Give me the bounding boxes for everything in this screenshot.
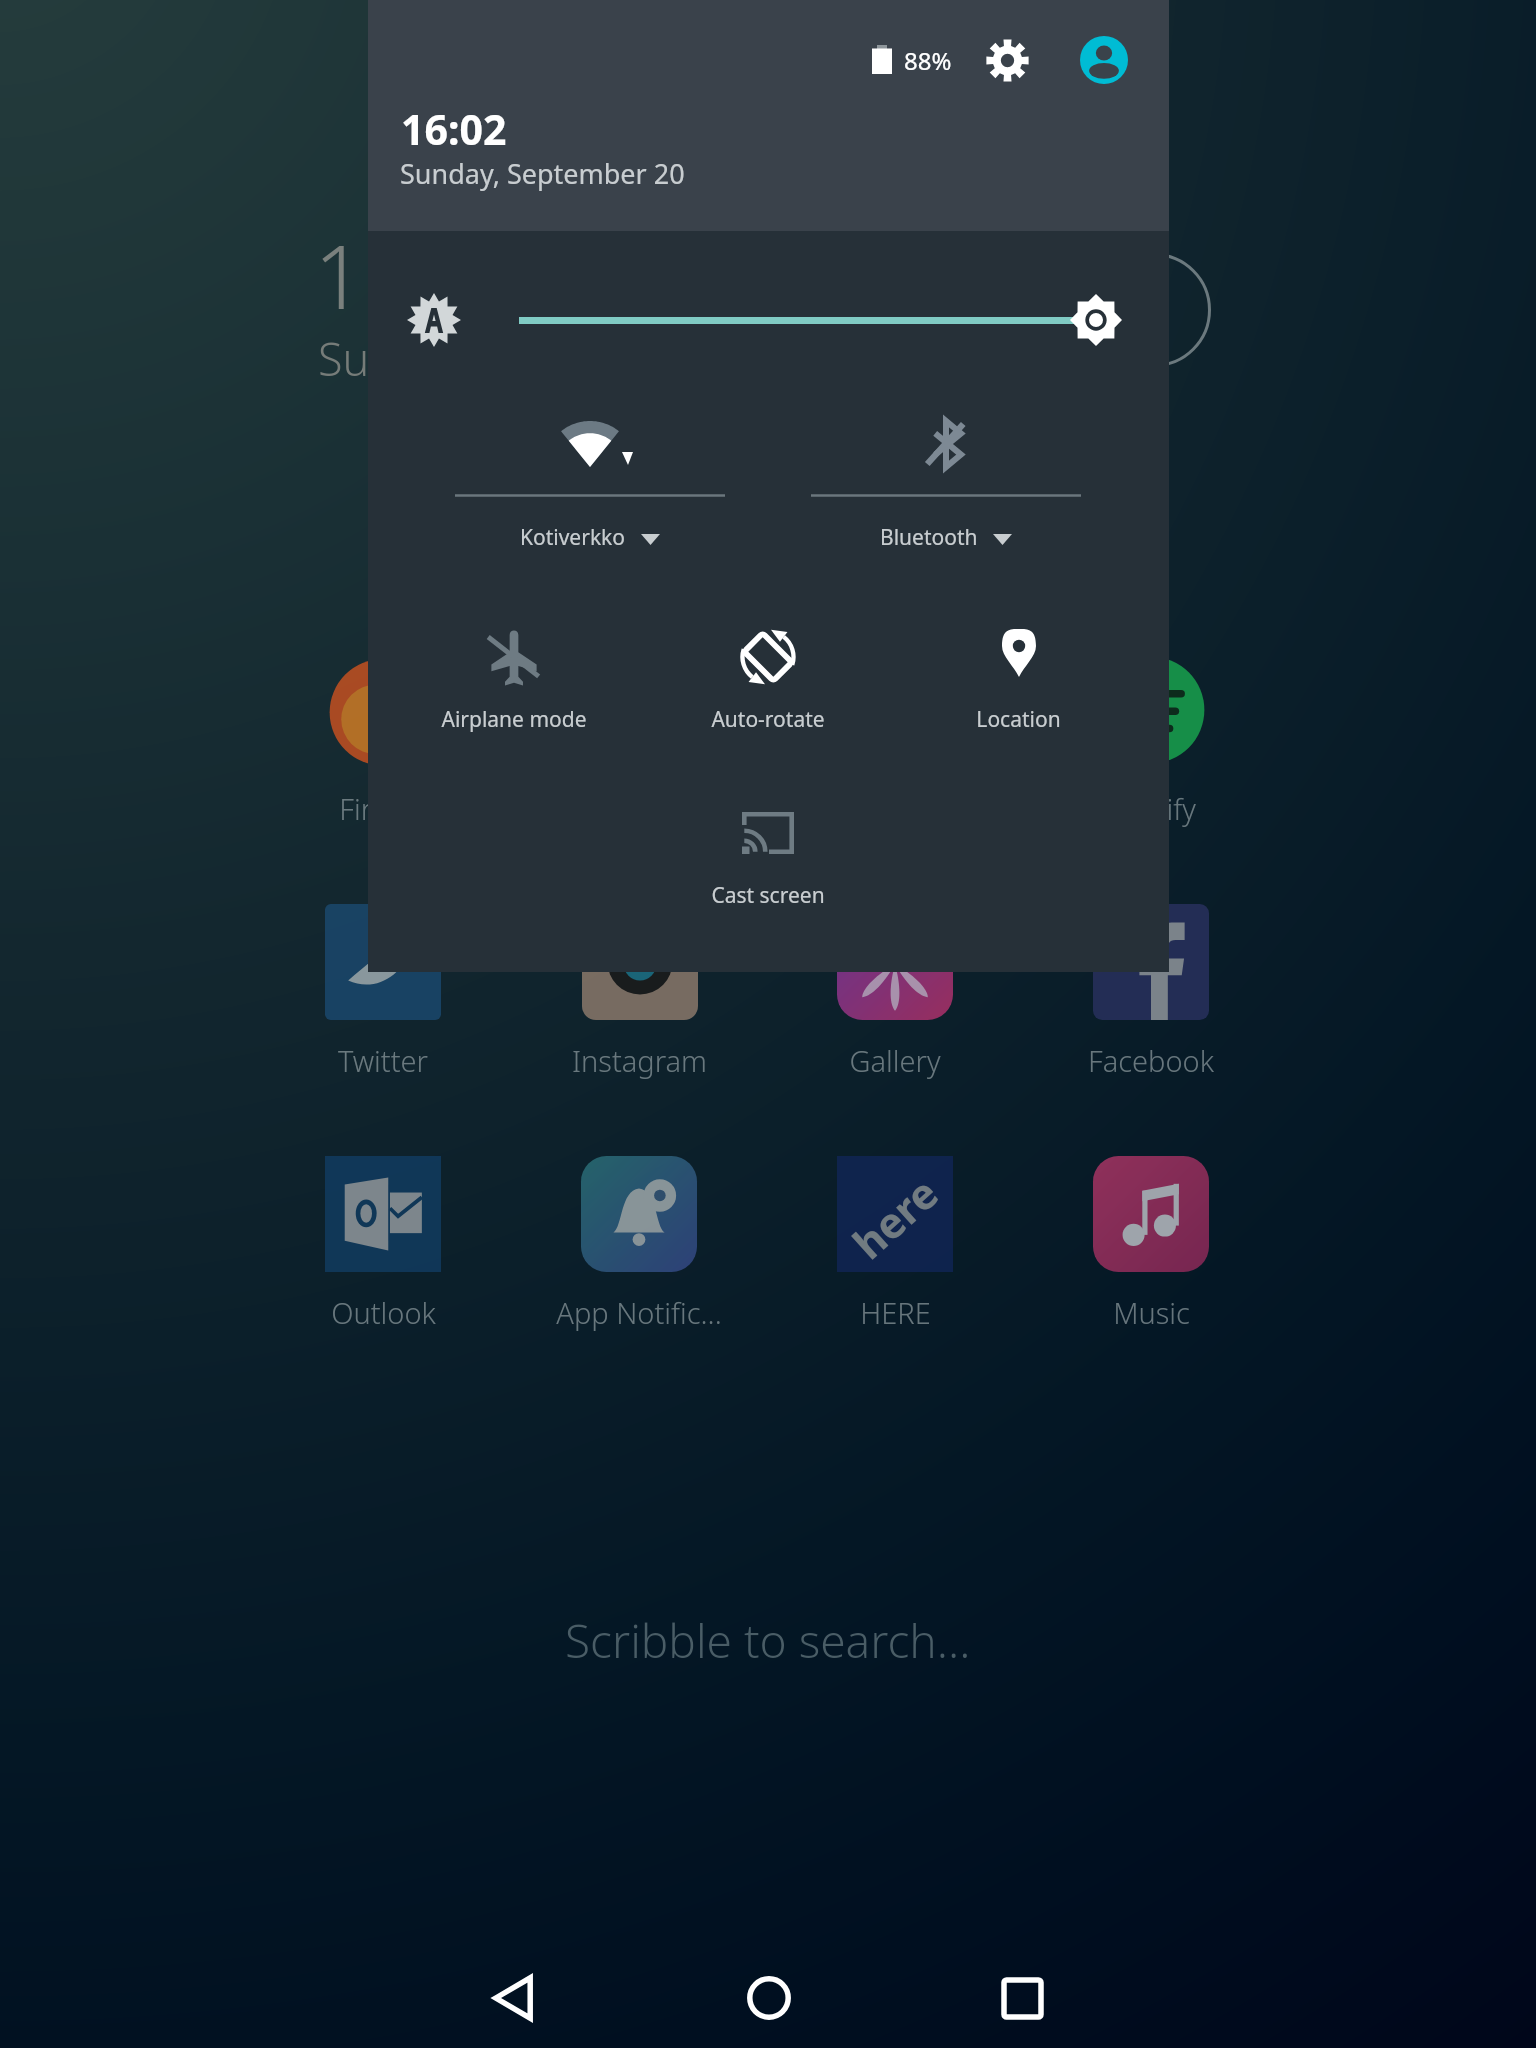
button[interactable]: Spotify xyxy=(1041,652,1261,828)
staticText: Outlook xyxy=(331,1293,436,1332)
staticText: Sunday, September 20 xyxy=(400,155,685,192)
staticText: here xyxy=(840,1164,950,1271)
button[interactable]: App Notific... xyxy=(529,1156,749,1332)
staticText: Scribble to search... xyxy=(565,1609,971,1672)
staticText: 88% xyxy=(904,44,952,77)
staticText: Cast screen xyxy=(711,881,825,910)
button[interactable]: Settings xyxy=(972,25,1042,95)
button[interactable]: Battery 88 percent xyxy=(864,36,954,84)
staticText: App Notific... xyxy=(556,1293,722,1332)
staticText: Auto-rotate xyxy=(711,705,825,734)
button[interactable]: Brightness xyxy=(368,250,1169,390)
staticText: Spotify xyxy=(1106,789,1196,828)
staticText: Airplane mode xyxy=(441,705,587,734)
button[interactable]: Bluetooth xyxy=(786,396,1106,576)
button[interactable]: User profile xyxy=(1080,36,1128,84)
staticText: Facebook xyxy=(1088,1041,1214,1080)
button[interactable]: Kotiverkko xyxy=(430,396,750,576)
button[interactable]: Music xyxy=(1041,1156,1261,1332)
button[interactable]: Recent apps xyxy=(934,1910,1110,2048)
staticText: Instagram xyxy=(572,1041,707,1080)
staticText: Gallery xyxy=(849,1041,941,1080)
staticText: Twitter xyxy=(338,1041,428,1080)
staticText: Sunday, September 20 xyxy=(318,328,778,389)
button[interactable]: Auto-rotate xyxy=(638,606,898,746)
button[interactable]: Cast screen xyxy=(638,782,898,922)
button[interactable]: here xyxy=(785,1156,1005,1332)
button[interactable]: Facebook xyxy=(1041,904,1261,1080)
button[interactable]: Instagram xyxy=(529,904,749,1080)
button[interactable]: Airplane mode xyxy=(384,606,644,746)
staticText: Kotiverkko xyxy=(520,523,626,552)
button[interactable]: Twitter xyxy=(273,904,493,1080)
button[interactable]: Firefox xyxy=(273,652,493,828)
staticText: 16:02 xyxy=(401,101,507,157)
staticText: HERE xyxy=(860,1293,931,1332)
staticText: Music xyxy=(1113,1293,1190,1332)
staticText: 16:02 xyxy=(314,215,537,335)
staticText: Location xyxy=(976,705,1061,734)
staticText: Firefox xyxy=(339,789,428,828)
staticText: Bluetooth xyxy=(880,523,978,552)
button[interactable]: Gallery xyxy=(785,904,1005,1080)
button[interactable]: Outlook xyxy=(273,1156,493,1332)
button[interactable]: Location xyxy=(888,606,1148,746)
button[interactable]: Home xyxy=(681,1910,857,2048)
button[interactable]: Back xyxy=(425,1910,601,2048)
